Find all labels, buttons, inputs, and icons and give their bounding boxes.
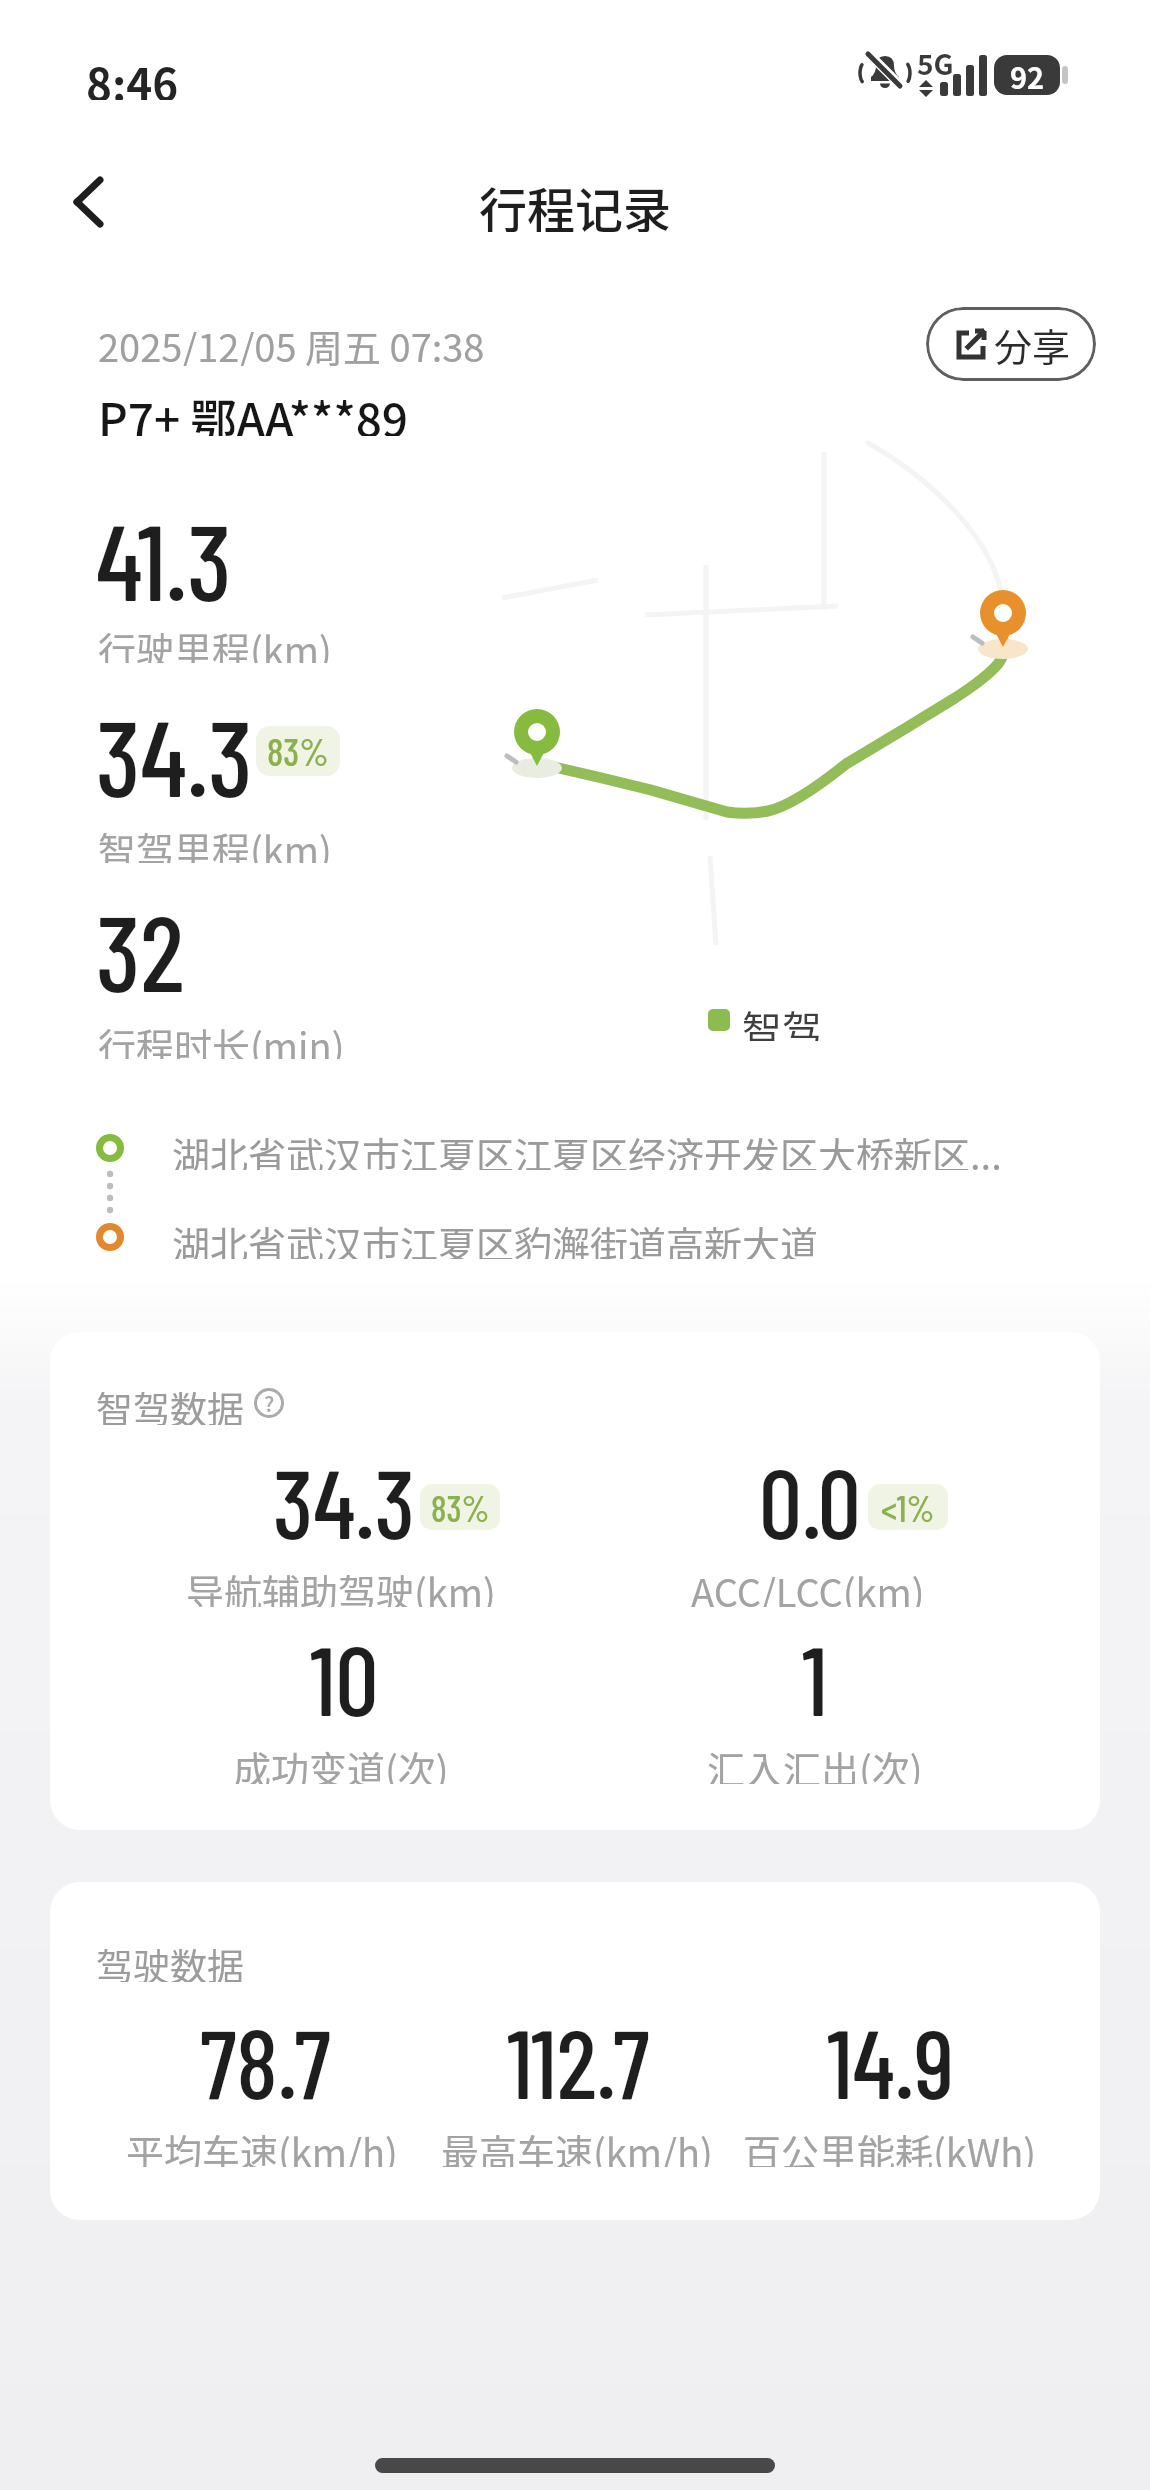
button[interactable]: ? xyxy=(254,1388,284,1418)
staticText: 智驾数据 xyxy=(96,1381,244,1425)
staticText: 10 xyxy=(310,1620,379,1730)
staticText: 导航辅助驾驶(km) xyxy=(186,1563,496,1607)
staticText: 百公里能耗(kWh) xyxy=(743,2123,1037,2167)
staticText: 83% xyxy=(267,728,329,774)
staticText: 行驶里程(km) xyxy=(98,621,332,663)
staticText: 0.0 xyxy=(759,1443,861,1553)
staticText: 2025/12/05 周五 07:38 xyxy=(98,318,485,366)
staticText: 5G xyxy=(917,43,954,75)
staticText: 112.7 xyxy=(507,2003,650,2113)
staticText: 湖北省武汉市江夏区江夏区经济开发区大桥新区... xyxy=(172,1126,1002,1170)
staticText: 智驾里程(km) xyxy=(98,821,332,863)
staticText: 8:46 xyxy=(86,50,179,100)
staticText: P7+ 鄂AA***89 xyxy=(98,384,409,436)
staticText: 驾驶数据 xyxy=(96,1938,244,1982)
staticText: 1 xyxy=(802,1620,828,1730)
staticText: 92 xyxy=(1010,55,1045,95)
staticText: 最高车速(km/h) xyxy=(441,2123,713,2167)
staticText: <1% xyxy=(881,1486,935,1529)
staticText: 32 xyxy=(96,886,185,998)
staticText: 分享 xyxy=(994,317,1071,372)
staticText: 行程记录 xyxy=(479,172,672,232)
staticText: 41.3 xyxy=(96,495,232,607)
staticText: 智驾 xyxy=(742,999,822,1041)
staticText: 83% xyxy=(431,1486,490,1529)
staticText: 湖北省武汉市江夏区豹澥街道高新大道 xyxy=(172,1215,819,1259)
staticText: 14.9 xyxy=(827,2003,954,2113)
button[interactable] xyxy=(55,165,125,235)
staticText: 34.3 xyxy=(96,691,253,803)
staticText: 成功变道(次) xyxy=(233,1740,449,1784)
staticText: 78.7 xyxy=(200,2003,331,2113)
staticText: 汇入汇出(次) xyxy=(707,1740,923,1784)
staticText: 行程时长(min) xyxy=(98,1017,345,1059)
staticText: 34.3 xyxy=(273,1443,415,1553)
staticText: 平均车速(km/h) xyxy=(126,2123,398,2167)
staticText: ACC/LCC(km) xyxy=(691,1563,925,1607)
button[interactable]: 分享 xyxy=(926,307,1096,381)
staticText: ? xyxy=(264,1388,275,1418)
